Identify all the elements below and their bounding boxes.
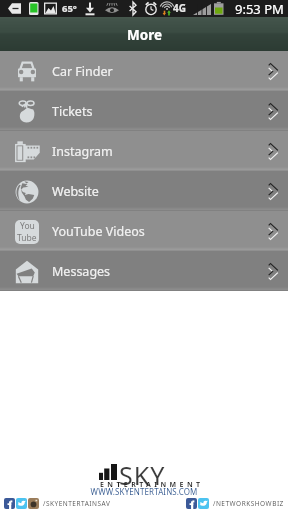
button[interactable]: Tickets [0,91,288,131]
button[interactable]: You [0,211,288,251]
button[interactable]: Instagram [0,131,288,171]
staticText: Instagram [52,143,113,160]
button[interactable]: Messages [0,251,288,291]
staticText: SKY [119,458,166,492]
staticText: 9:53 PM [235,0,284,17]
staticText: Car Finder [52,63,113,80]
staticText: More [127,26,162,44]
staticText: Tickets [52,103,93,120]
staticText: Website [52,183,99,200]
staticText: 4G [173,1,186,15]
staticText: WWW.SKYENTERTAINS.COM [0,486,288,497]
button[interactable]: Website [0,171,288,211]
staticText: Tube [17,232,37,244]
staticText: /SKYENTERTAINSAV [43,499,111,508]
staticText: You [20,220,35,232]
button[interactable]: Car Finder [0,51,288,91]
staticText: ENTERTAINMENT [100,480,204,490]
staticText: Messages [52,263,111,280]
staticText: YouTube Videos [52,223,145,240]
staticText: /NETWORKSHOWBIZ [213,499,284,508]
staticText: 65° [62,2,77,15]
